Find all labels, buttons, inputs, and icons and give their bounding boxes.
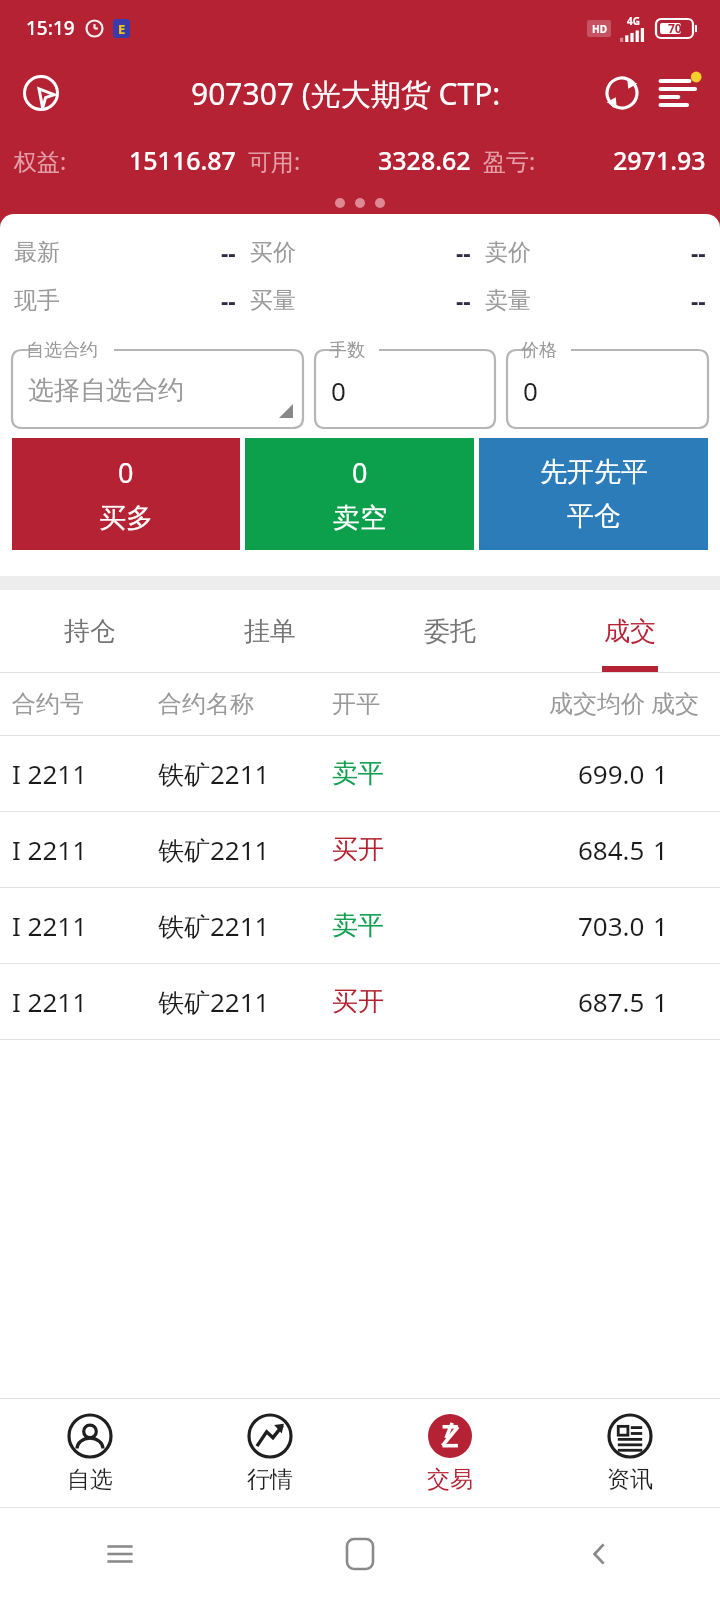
staticText: 卖价 [485,238,531,267]
staticText: 3328.62 [378,143,471,177]
staticText: 交易 [427,1465,473,1494]
staticText: 买量 [250,286,296,315]
button[interactable]: I 2211 [0,812,720,887]
staticText: -- [221,285,236,316]
button[interactable]: 先开先平 [479,438,708,550]
button[interactable]: 挂单 [180,590,360,672]
staticText: I 2211 [12,756,158,791]
staticText: I 2211 [12,832,158,867]
button[interactable]: I 2211 [0,736,720,811]
staticText: 铁矿2211 [158,832,332,868]
staticText: -- [221,237,236,268]
staticText: 挂单 [244,615,296,648]
staticText: 0 [523,373,538,408]
button[interactable]: 自选合约 [12,340,303,428]
staticText: 15116.87 [129,143,236,177]
staticText: 4G [627,14,640,28]
staticText: 买开 [332,985,464,1018]
staticText: 2971.93 [613,143,706,177]
staticText: -- [456,285,471,316]
button[interactable]: Locate [14,66,68,120]
staticText: -- [691,285,706,316]
button[interactable]: I 2211 [0,888,720,963]
staticText: 卖平 [332,909,464,942]
staticText: 先开先平 [540,455,648,489]
staticText: 1 [653,832,668,867]
staticText: 权益: [14,145,67,176]
button[interactable]: 自选 [0,1399,180,1507]
staticText: 1 [653,756,668,791]
staticText: 0 [331,373,346,408]
staticText: 15:19 [26,15,75,41]
staticText: 自选 [67,1465,113,1494]
button[interactable]: Menu [650,64,708,122]
staticText: 卖空 [333,501,387,535]
staticText: 703.0 [578,908,645,943]
staticText: 开平 [332,689,464,719]
staticText: 可用: [248,145,301,176]
staticText: 1 [653,908,668,943]
staticText: 资讯 [607,1465,653,1494]
staticText: I 2211 [12,984,158,1019]
button[interactable]: 成交 [540,590,720,672]
staticText: -- [691,237,706,268]
staticText: 成交 [651,689,699,719]
staticText: 行情 [247,1465,293,1494]
staticText: 买价 [250,238,296,267]
staticText: 自选合约 [26,339,98,362]
staticText: 70 [668,20,682,36]
staticText: 907307 (光大期货 CTP: [191,73,501,114]
staticText: 卖平 [332,757,464,790]
staticText: 最新 [14,238,60,267]
staticText: 铁矿2211 [158,984,332,1020]
staticText: 成交均价 [549,689,645,719]
button[interactable]: 资讯 [540,1399,720,1507]
staticText: 价格 [521,339,557,362]
staticText: I 2211 [12,908,158,943]
button[interactable]: 持仓 [0,590,180,672]
staticText: 699.0 [578,756,645,791]
button[interactable]: 行情 [180,1399,360,1507]
staticText: 持仓 [64,615,116,648]
staticText: 选择自选合约 [28,374,184,407]
staticText: 0 [352,454,368,491]
staticText: 成交 [604,615,656,648]
staticText: 委托 [424,615,476,648]
button[interactable]: I 2211 [0,964,720,1039]
staticText: 买多 [99,501,153,535]
button[interactable]: 委托 [360,590,540,672]
button[interactable]: 价格 [507,340,708,428]
button[interactable]: 交易 [360,1399,540,1507]
staticText: 合约名称 [158,689,332,719]
button[interactable]: Refresh [594,65,650,121]
staticText: 684.5 [578,832,645,867]
staticText: 铁矿2211 [158,756,332,792]
staticText: 铁矿2211 [158,908,332,944]
staticText: -- [456,237,471,268]
staticText: 现手 [14,286,60,315]
staticText: 盈亏: [483,145,536,176]
staticText: 手数 [329,339,365,362]
staticText: 平仓 [567,499,621,533]
button[interactable]: 0 [245,438,474,550]
button[interactable]: 手数 [315,340,495,428]
staticText: 687.5 [578,984,645,1019]
staticText: E [118,20,126,38]
staticText: 0 [118,454,134,491]
staticText: 合约号 [12,689,158,719]
staticText: 卖量 [485,286,531,315]
staticText: HD [592,22,607,36]
staticText: 1 [653,984,668,1019]
staticText: 买开 [332,833,464,866]
button[interactable]: 0 [12,438,240,550]
